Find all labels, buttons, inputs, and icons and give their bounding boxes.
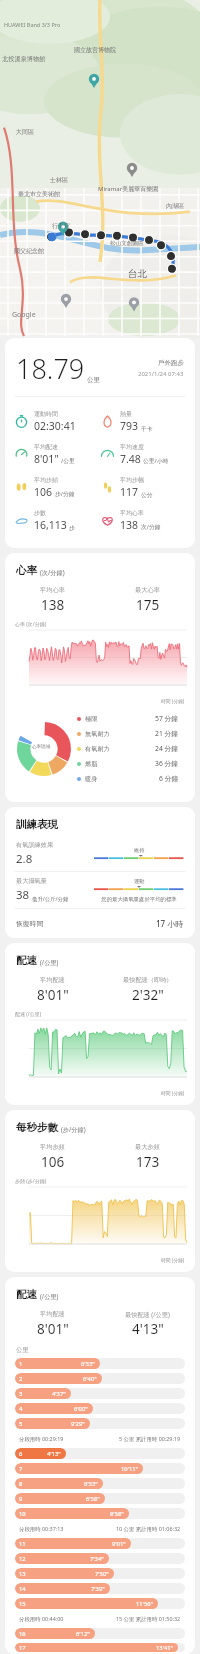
- staticText: 18.79: [16, 350, 85, 387]
- staticText: 配速 (/公里): [15, 1011, 42, 1018]
- staticText: 2: [19, 1375, 23, 1383]
- staticText: 9'29": [71, 1420, 85, 1428]
- staticText: 士林區: [50, 176, 68, 184]
- staticText: HUAWEI Band 3/3 Pro: [4, 21, 61, 28]
- staticText: 2'32": [132, 986, 164, 1004]
- staticText: 11: [19, 1540, 26, 1548]
- staticText: 02:30:41: [34, 419, 76, 433]
- button[interactable]: 平均步頻: [14, 476, 100, 499]
- staticText: 13'41": [156, 1644, 173, 1652]
- staticText: 17: [19, 1644, 26, 1652]
- staticText: 4'13": [47, 1450, 61, 1458]
- button[interactable]: 4: [15, 1403, 185, 1414]
- staticText: 1: [19, 1360, 23, 1368]
- staticText: 6'12": [76, 1630, 90, 1638]
- staticText: 7'39": [91, 1585, 105, 1593]
- staticText: 北投溫泉博物館: [2, 55, 46, 63]
- staticText: 平均配速: [40, 976, 65, 984]
- staticText: 4'37": [52, 1390, 66, 1398]
- staticText: 平均心率: [40, 586, 65, 594]
- staticText: 次/分鐘: [141, 523, 161, 531]
- staticText: 15: [19, 1600, 26, 1608]
- staticText: 4'13": [132, 1320, 164, 1338]
- staticText: 毫升/公斤/分鐘: [32, 895, 69, 902]
- staticText: 最快配速（即時）: [123, 976, 173, 984]
- staticText: 時間 (分鐘): [161, 1090, 185, 1097]
- staticText: 12: [19, 1555, 26, 1563]
- button[interactable]: 1: [15, 1358, 185, 1369]
- staticText: 17 小時: [156, 918, 184, 929]
- button[interactable]: 6: [15, 1448, 185, 1459]
- button[interactable]: 15: [15, 1598, 185, 1609]
- button[interactable]: 16: [15, 1628, 185, 1639]
- staticText: 平均步頻: [34, 476, 58, 484]
- staticText: 8'58": [110, 1510, 124, 1518]
- button[interactable]: 8: [15, 1478, 185, 1489]
- button[interactable]: 步數: [14, 509, 100, 532]
- staticText: 5 公里 累計用時 00:29:19: [119, 1435, 181, 1442]
- staticText: 無氧耐力: [85, 730, 110, 738]
- staticText: 7'50": [95, 1570, 109, 1578]
- staticText: 38: [16, 887, 30, 903]
- button[interactable]: 2: [15, 1373, 185, 1384]
- staticText: 國立故宮博物院: [74, 46, 116, 54]
- staticText: 5: [19, 1420, 23, 1428]
- staticText: 106: [41, 1153, 65, 1171]
- staticText: 13: [19, 1570, 26, 1578]
- staticText: 運動時間: [34, 410, 58, 418]
- staticText: 3: [19, 1390, 23, 1398]
- button[interactable]: Route map: [0, 0, 200, 336]
- staticText: 8: [19, 1480, 23, 1488]
- staticText: 配速: [16, 954, 37, 967]
- button[interactable]: 14: [15, 1583, 185, 1594]
- staticText: 6'40": [83, 1375, 97, 1383]
- staticText: 平均配速: [40, 1310, 65, 1318]
- button[interactable]: 平均心率: [100, 509, 186, 532]
- button[interactable]: 熱量: [100, 410, 186, 433]
- staticText: 熱量: [120, 410, 132, 418]
- staticText: 步/分鐘: [55, 490, 75, 498]
- button[interactable]: 7: [15, 1463, 185, 1474]
- staticText: 11'56": [136, 1600, 153, 1608]
- staticText: 公里/小時: [143, 457, 169, 465]
- staticText: 138: [120, 518, 139, 532]
- staticText: 公里: [16, 1346, 29, 1354]
- button[interactable]: 平均步幅: [100, 476, 186, 499]
- staticText: 57 分鐘: [155, 714, 179, 723]
- staticText: 117: [120, 485, 139, 499]
- staticText: 步數: [34, 509, 46, 517]
- button[interactable]: 17: [15, 1643, 185, 1652]
- staticText: 173: [136, 1153, 160, 1171]
- button[interactable]: 12: [15, 1553, 185, 1564]
- button[interactable]: 9: [15, 1493, 185, 1504]
- staticText: 15 公里 累計用時 01:50:32: [116, 1615, 181, 1622]
- button[interactable]: 平均速度: [100, 443, 186, 466]
- staticText: 心率: [16, 564, 37, 577]
- staticText: 10: [19, 1510, 26, 1518]
- staticText: 最大攝氧量: [16, 877, 47, 885]
- button[interactable]: 10: [15, 1508, 185, 1519]
- staticText: 6: [19, 1450, 23, 1458]
- button[interactable]: 3: [15, 1388, 185, 1399]
- staticText: 6'53": [84, 1480, 98, 1488]
- button[interactable]: 平均配速: [14, 443, 100, 466]
- staticText: 16,113: [34, 518, 67, 532]
- staticText: 6'00": [74, 1405, 88, 1413]
- button[interactable]: 運動時間: [14, 410, 100, 433]
- staticText: (步/分鐘): [61, 1125, 86, 1133]
- staticText: 分段用時 00:44:00: [19, 1615, 64, 1622]
- staticText: Google: [12, 310, 36, 320]
- button[interactable]: 5: [15, 1418, 185, 1429]
- staticText: 7'34": [90, 1555, 104, 1563]
- staticText: 步頻 (步/分鐘): [15, 1178, 47, 1185]
- staticText: 175: [136, 596, 160, 614]
- staticText: 平均步頻: [40, 1143, 65, 1151]
- staticText: 時間 (分鐘): [161, 698, 185, 705]
- button[interactable]: 11: [15, 1538, 185, 1549]
- button[interactable]: 13: [15, 1568, 185, 1579]
- staticText: 時間 (分鐘): [161, 1257, 185, 1264]
- staticText: 8'01": [37, 1320, 69, 1338]
- staticText: 千卡: [141, 425, 153, 432]
- staticText: 臺北市立美術館: [18, 190, 60, 198]
- staticText: 極限: [85, 715, 98, 723]
